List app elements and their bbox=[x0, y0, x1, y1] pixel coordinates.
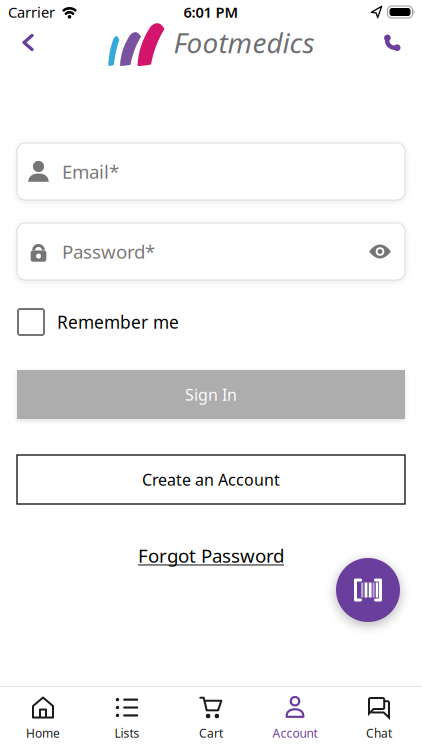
button[interactable]: Account bbox=[253, 688, 337, 748]
staticText: Email* bbox=[62, 159, 119, 184]
staticText: Chat bbox=[366, 725, 392, 741]
button[interactable]: Sign In bbox=[17, 370, 405, 419]
staticText: 6:01 PM bbox=[183, 2, 238, 22]
staticText: Lists bbox=[114, 725, 139, 741]
button[interactable]: Create an Account bbox=[17, 455, 405, 504]
staticText: Remember me bbox=[57, 310, 179, 333]
button[interactable]: Email bbox=[17, 143, 405, 200]
button[interactable]: Lists bbox=[85, 688, 169, 748]
staticText: Account bbox=[272, 725, 317, 741]
button[interactable]: Home bbox=[1, 688, 85, 748]
button[interactable]: Cart bbox=[169, 688, 253, 748]
staticText: Home bbox=[26, 725, 60, 741]
button[interactable]: Forgot Password bbox=[138, 543, 284, 568]
staticText: Password* bbox=[62, 239, 155, 264]
staticText: Create an Account bbox=[142, 469, 280, 490]
button[interactable]: Chat bbox=[337, 688, 421, 748]
staticText: Footmedics bbox=[173, 24, 314, 61]
button[interactable]: Scan barcode bbox=[336, 558, 400, 622]
staticText: Cart bbox=[199, 725, 223, 741]
staticText: Carrier bbox=[8, 2, 55, 22]
button[interactable]: Show password bbox=[365, 236, 395, 266]
button[interactable]: Call bbox=[370, 20, 414, 64]
staticText: Sign In bbox=[185, 384, 237, 405]
button[interactable]: Back bbox=[6, 20, 50, 64]
staticText: Forgot Password bbox=[138, 543, 284, 568]
button[interactable]: Password bbox=[17, 223, 405, 280]
button[interactable]: Remember me bbox=[18, 309, 179, 335]
